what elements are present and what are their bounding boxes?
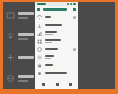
button[interactable] bbox=[35, 13, 78, 21]
button[interactable] bbox=[3, 26, 115, 47]
button[interactable]: Tab 1 bbox=[37, 80, 49, 89]
button[interactable] bbox=[35, 37, 78, 45]
button[interactable]: More options bbox=[35, 6, 78, 13]
button[interactable] bbox=[3, 68, 115, 89]
button[interactable] bbox=[3, 5, 115, 26]
button[interactable] bbox=[35, 21, 78, 29]
button[interactable]: Tab 2 bbox=[51, 80, 63, 89]
button[interactable] bbox=[35, 69, 78, 77]
button[interactable] bbox=[35, 53, 78, 61]
button[interactable] bbox=[35, 61, 78, 69]
button[interactable] bbox=[3, 47, 115, 68]
button[interactable]: Tab 3 bbox=[64, 80, 76, 89]
button[interactable] bbox=[35, 45, 78, 53]
button[interactable] bbox=[35, 29, 78, 37]
